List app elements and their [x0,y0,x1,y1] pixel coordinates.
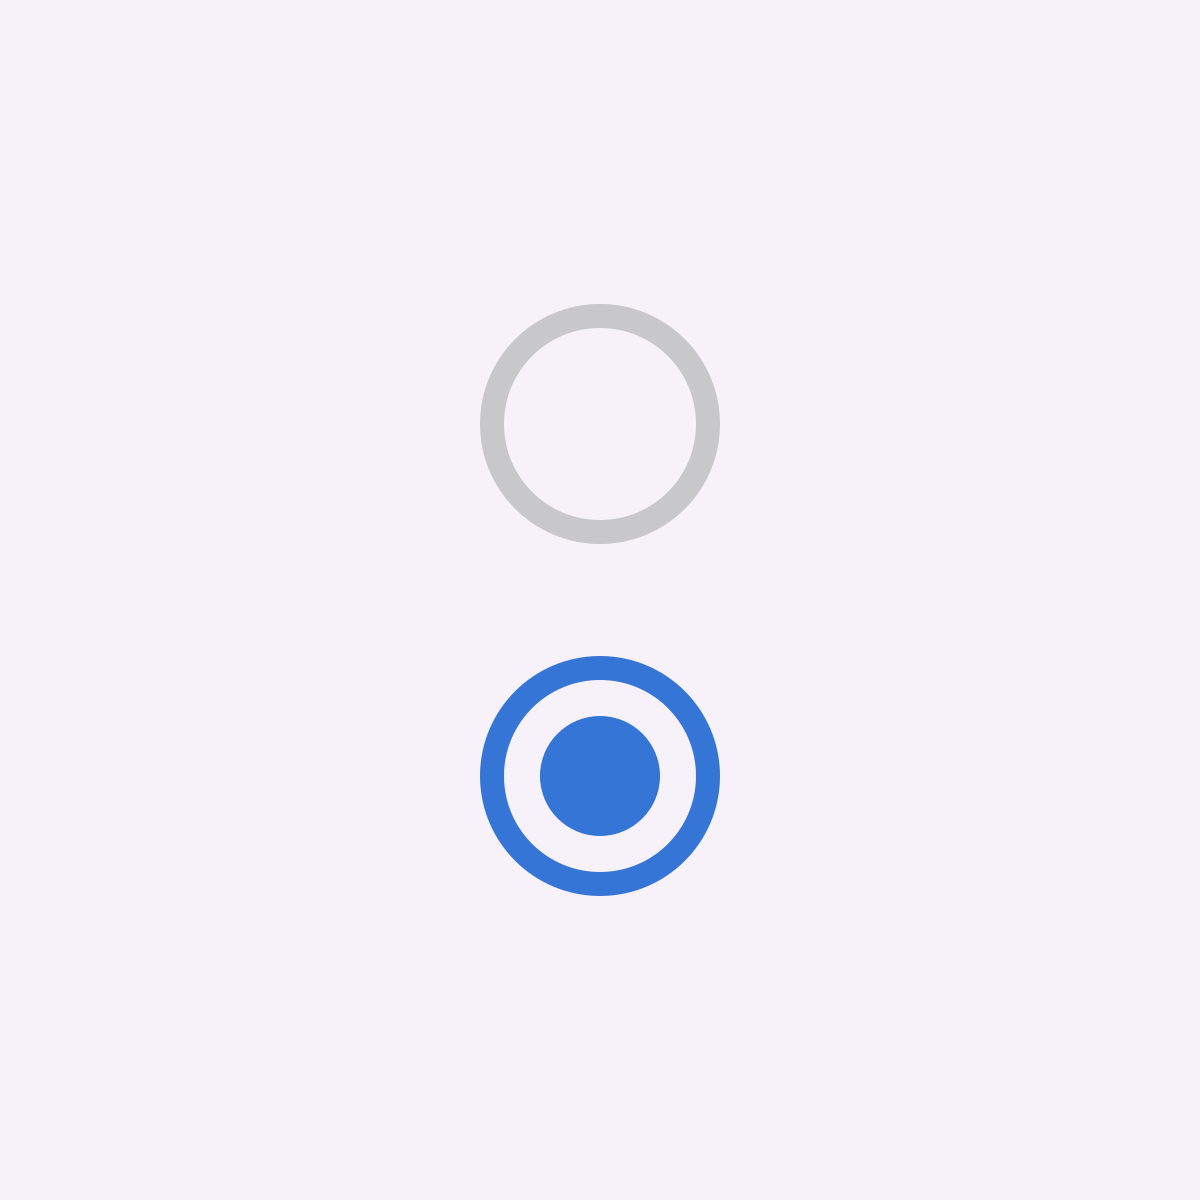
button[interactable]: Option, selected [480,656,720,896]
button[interactable]: Option, not selected [480,304,720,544]
